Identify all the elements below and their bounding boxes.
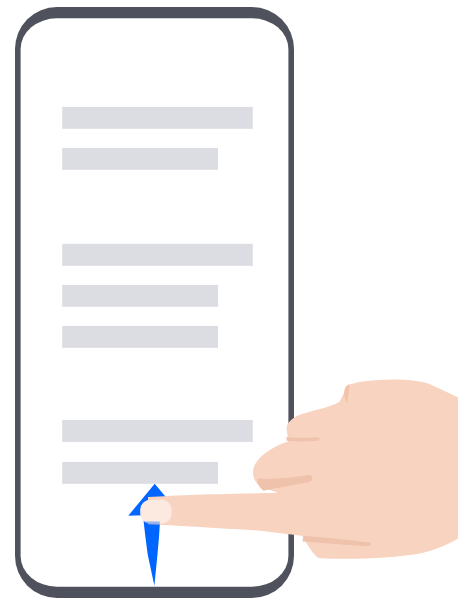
button[interactable]: Swipe up gesture illustration [0,0,458,612]
